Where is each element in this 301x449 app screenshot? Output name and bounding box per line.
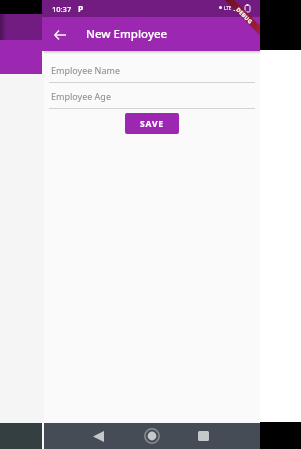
staticText: SAVE — [140, 118, 164, 130]
button[interactable]: Employee Age — [49, 83, 255, 109]
staticText: DEBUG — [235, 6, 254, 25]
staticText: Employee Age — [51, 90, 111, 102]
button[interactable]: SAVE — [125, 113, 179, 134]
button[interactable]: Back — [86, 426, 110, 446]
button[interactable]: Back — [48, 23, 71, 46]
staticText: 10:37 — [52, 4, 72, 14]
staticText: New Employee — [86, 26, 168, 42]
button[interactable]: Recents — [191, 426, 215, 446]
button[interactable]: Employee Name — [49, 57, 255, 83]
staticText: P — [78, 3, 84, 15]
staticText: LTE — [224, 5, 232, 11]
staticText: Employee Name — [51, 64, 121, 76]
button[interactable]: Home — [140, 426, 164, 446]
